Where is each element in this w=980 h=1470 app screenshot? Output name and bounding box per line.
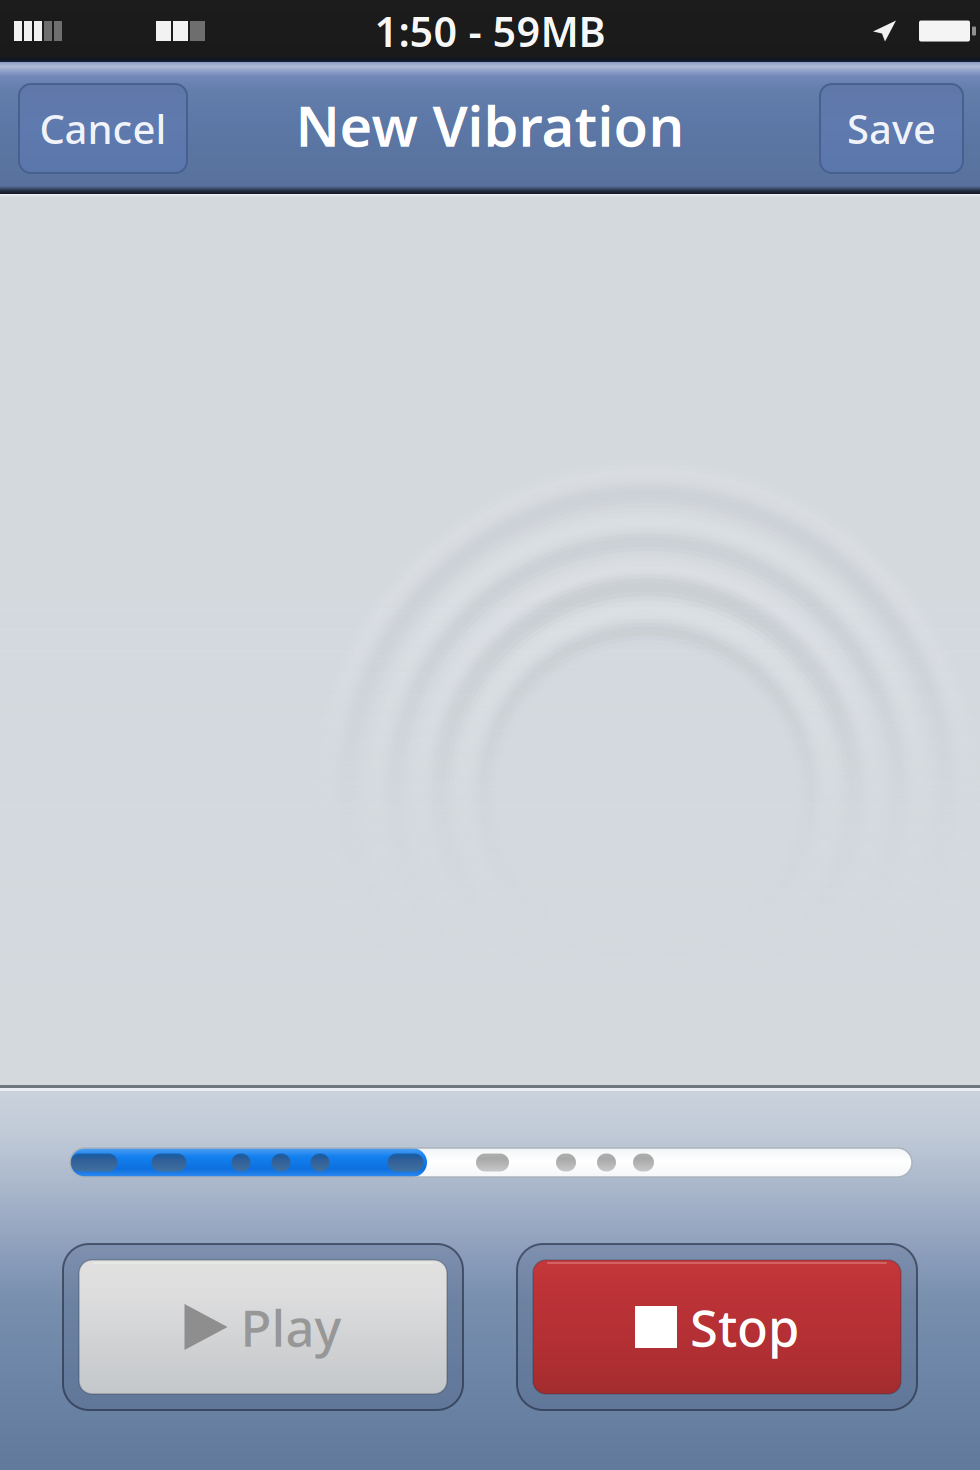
staticText: Stop <box>690 1293 799 1361</box>
button[interactable]: Cancel <box>19 84 187 173</box>
button[interactable]: Stop <box>517 1244 917 1410</box>
button[interactable]: Play <box>63 1244 463 1410</box>
button[interactable]: Save <box>820 84 963 173</box>
staticText: Play <box>240 1293 341 1361</box>
button[interactable]: Vibration pattern <box>0 1148 980 1177</box>
staticText: Cancel <box>39 102 166 155</box>
staticText: New Vibration <box>295 88 684 162</box>
staticText: 1:50 - 59MB <box>374 4 605 58</box>
staticText: Save <box>847 102 936 155</box>
